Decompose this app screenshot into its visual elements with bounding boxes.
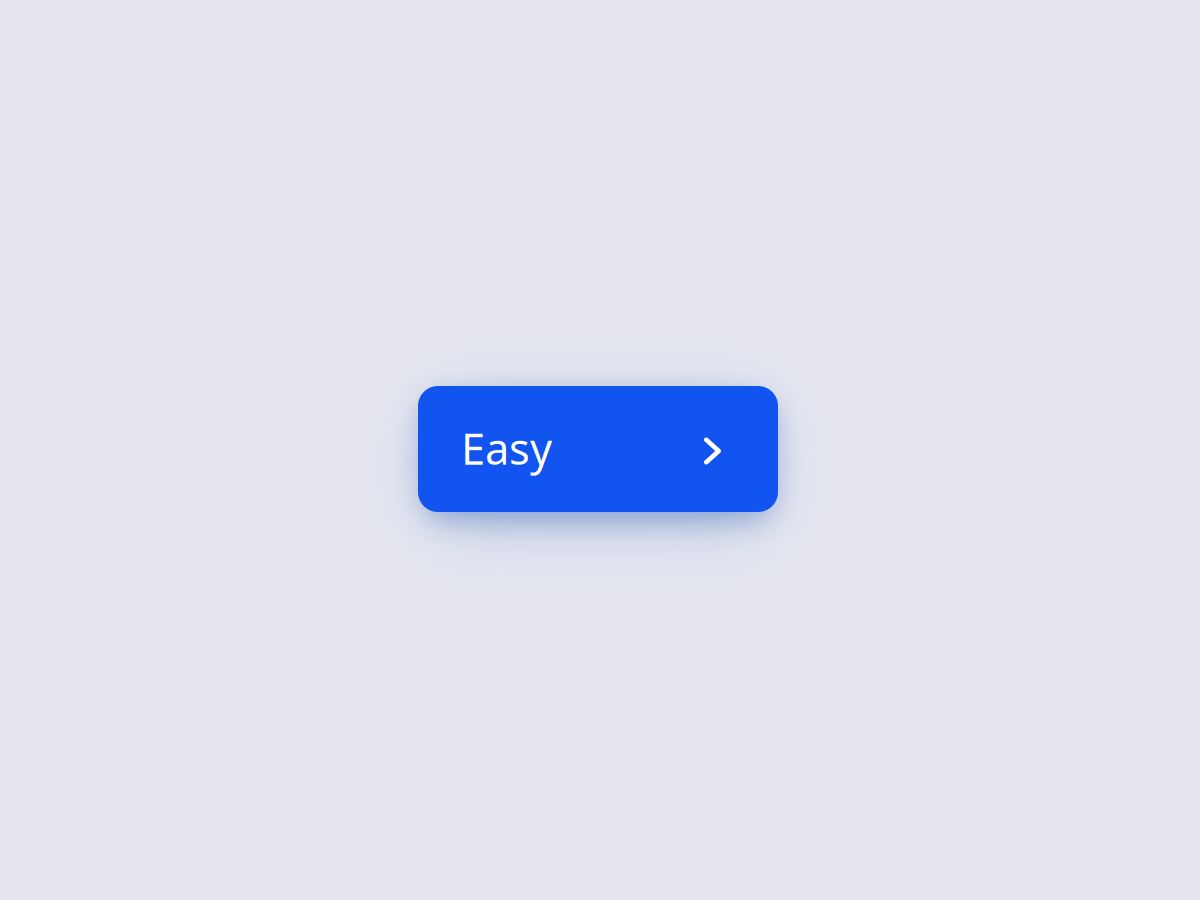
button[interactable]: Easy	[418, 386, 778, 512]
staticText: Easy	[461, 418, 552, 478]
